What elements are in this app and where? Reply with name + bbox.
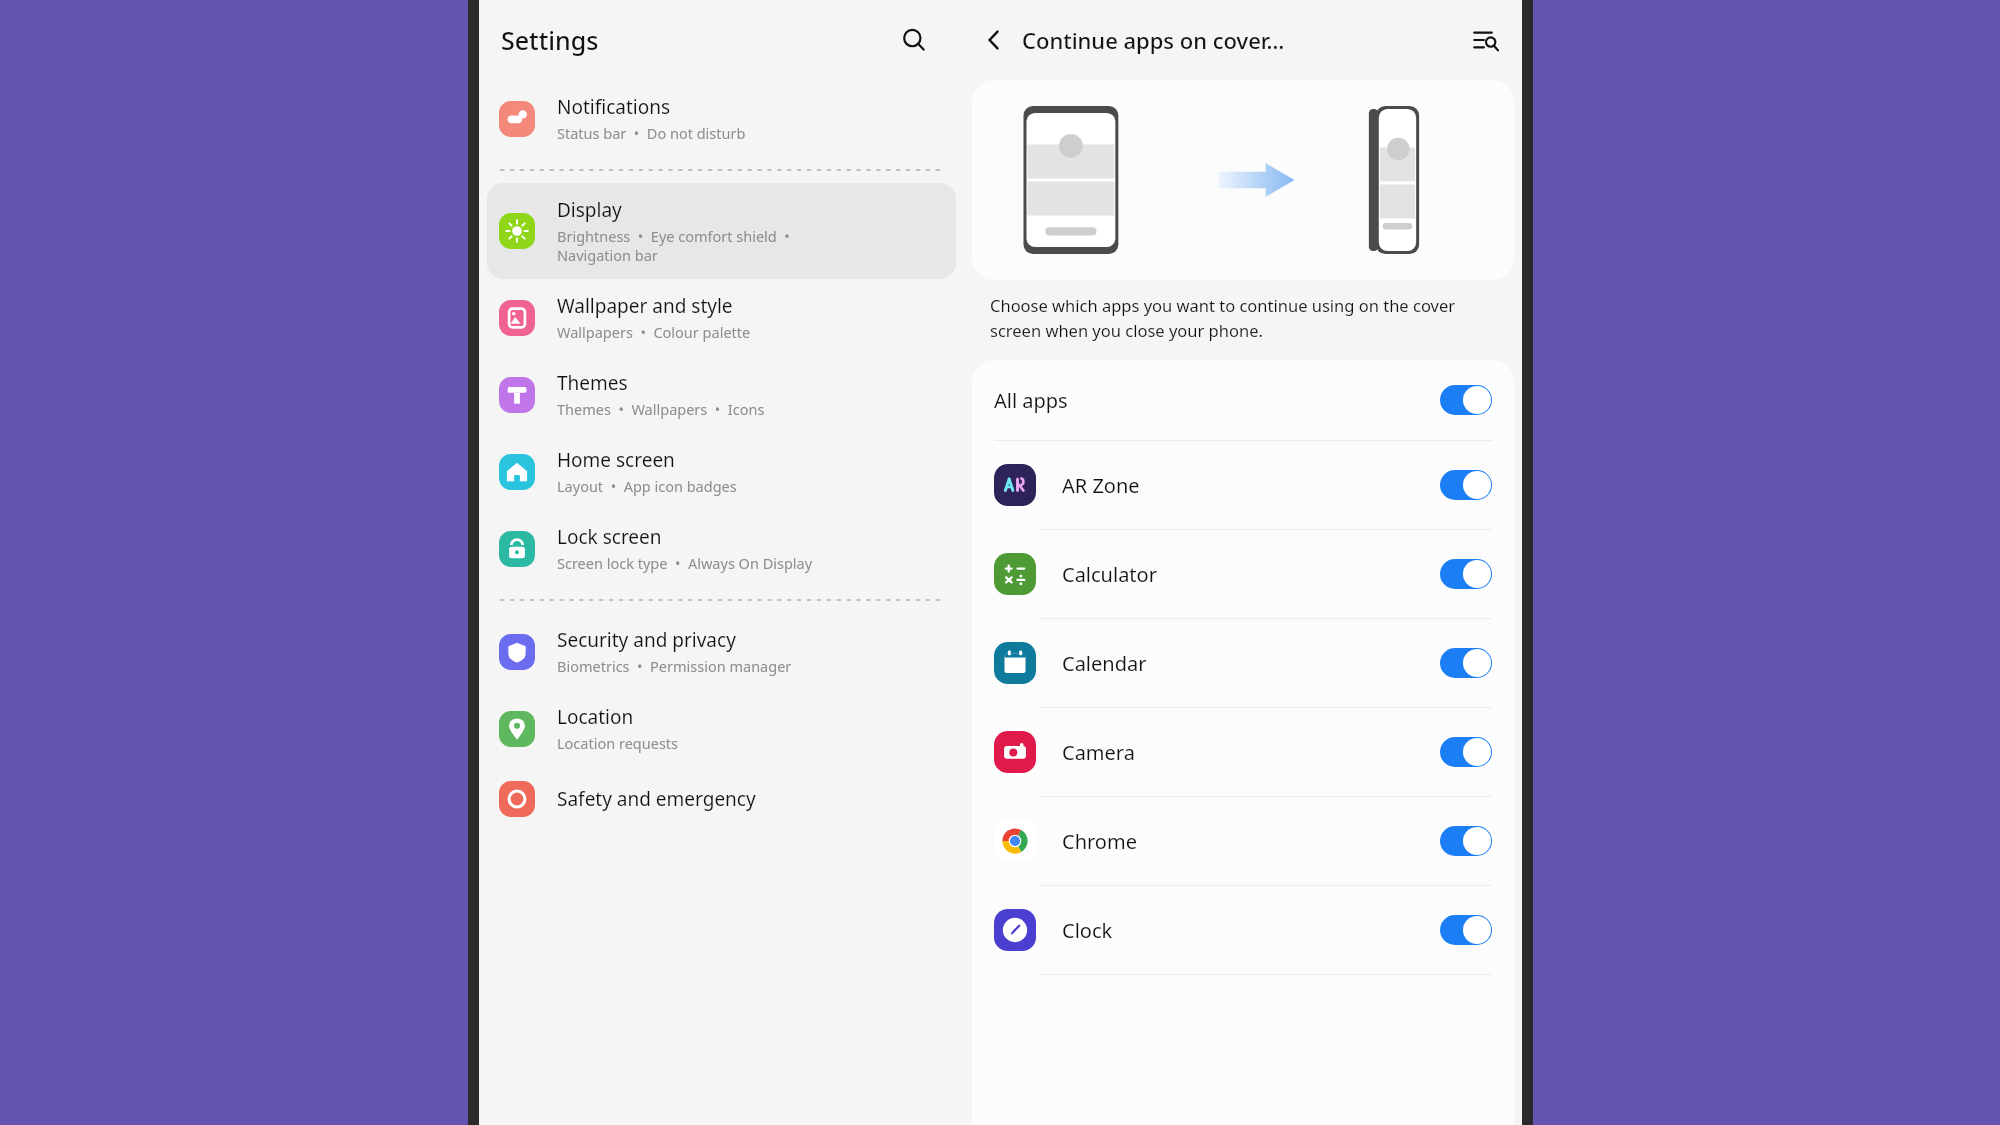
staticText: Home screen xyxy=(557,447,675,473)
button[interactable]: Toggle xyxy=(1440,559,1492,589)
button[interactable]: Wallpaper and style xyxy=(487,279,956,356)
staticText: Lock screen xyxy=(557,524,662,550)
staticText: Continue apps on cover… xyxy=(1022,25,1464,55)
staticText: Brightness • Eye comfort shield • Naviga… xyxy=(557,226,790,265)
staticText: Calendar xyxy=(1062,650,1440,677)
staticText: Safety and emergency xyxy=(557,786,756,812)
button[interactable]: Location xyxy=(487,690,956,767)
staticText: Display xyxy=(557,197,622,223)
staticText: Choose which apps you want to continue u… xyxy=(990,294,1496,342)
staticText: Location xyxy=(557,704,634,730)
staticText: Themes xyxy=(557,370,628,396)
staticText: Location requests xyxy=(557,733,679,753)
button[interactable]: Safety and emergency xyxy=(487,767,956,831)
staticText: Security and privacy xyxy=(557,627,736,653)
button[interactable]: Toggle xyxy=(1440,915,1492,945)
button[interactable]: Toggle xyxy=(1440,648,1492,678)
staticText: Chrome xyxy=(1062,828,1440,855)
staticText: Calculator xyxy=(1062,561,1440,588)
staticText: Status bar • Do not disturb xyxy=(557,123,746,143)
button[interactable]: Search xyxy=(892,18,936,62)
staticText: AR Zone xyxy=(1062,472,1440,499)
button[interactable]: Calculator xyxy=(972,530,1514,618)
button[interactable]: Toggle xyxy=(1440,470,1492,500)
button[interactable]: Notifications xyxy=(487,80,956,157)
button[interactable]: Calendar xyxy=(972,619,1514,707)
staticText: Clock xyxy=(1062,917,1440,944)
staticText: Camera xyxy=(1062,739,1440,766)
button[interactable]: Search settings xyxy=(1464,18,1508,62)
button[interactable]: Home screen xyxy=(487,433,956,510)
button[interactable]: Themes xyxy=(487,356,956,433)
button[interactable]: Toggle xyxy=(1440,737,1492,767)
staticText: Layout • App icon badges xyxy=(557,476,737,496)
button[interactable]: Clock xyxy=(972,886,1514,974)
staticText: Wallpapers • Colour palette xyxy=(557,322,751,342)
staticText: Screen lock type • Always On Display xyxy=(557,553,813,573)
button[interactable]: Security and privacy xyxy=(487,613,956,690)
button[interactable]: Camera xyxy=(972,708,1514,796)
button[interactable]: Display xyxy=(487,183,956,279)
staticText: Notifications xyxy=(557,94,671,120)
staticText: Biometrics • Permission manager xyxy=(557,656,792,676)
button[interactable]: Toggle xyxy=(1440,826,1492,856)
staticText: Settings xyxy=(501,23,599,57)
button[interactable]: All apps xyxy=(972,360,1514,440)
button[interactable]: AR Zone xyxy=(972,441,1514,529)
staticText: Themes • Wallpapers • Icons xyxy=(557,399,765,419)
button[interactable]: Chrome xyxy=(972,797,1514,885)
button[interactable]: Toggle xyxy=(1440,385,1492,415)
button[interactable]: Back xyxy=(972,18,1016,62)
button[interactable]: Lock screen xyxy=(487,510,956,587)
staticText: All apps xyxy=(994,387,1440,414)
staticText: Wallpaper and style xyxy=(557,293,733,319)
